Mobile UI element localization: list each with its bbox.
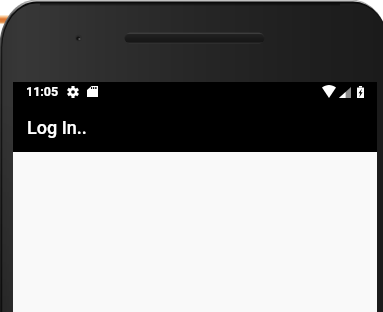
staticText: 11:05: [26, 84, 59, 99]
button[interactable]: Log In..: [13, 101, 377, 152]
staticText: Log In..: [27, 117, 87, 138]
